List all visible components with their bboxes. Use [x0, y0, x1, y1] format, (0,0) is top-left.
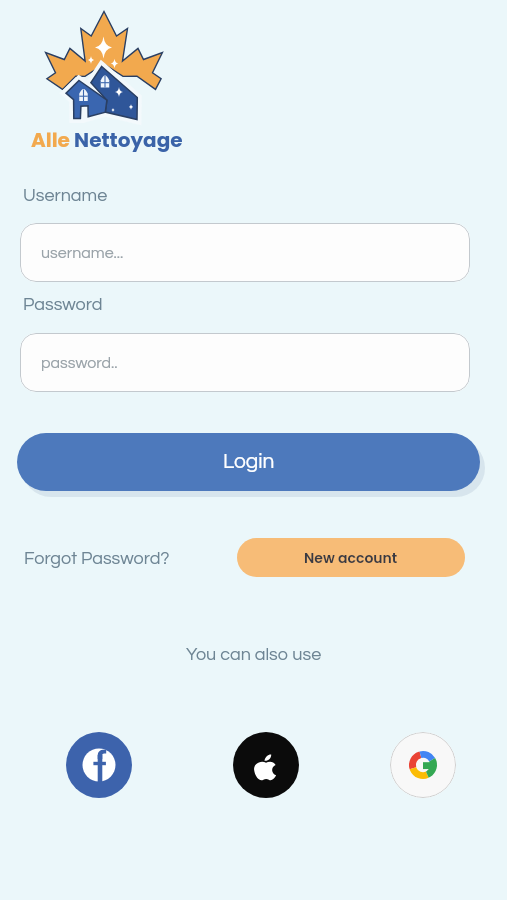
button[interactable]: Sign in with Google — [390, 732, 456, 798]
button[interactable]: username... — [20, 223, 470, 282]
button[interactable]: Sign in with Apple — [233, 732, 299, 798]
button[interactable]: Login — [17, 433, 480, 491]
button[interactable]: Forgot Password? — [24, 549, 170, 568]
button[interactable]: password.. — [20, 333, 470, 392]
staticText: New account — [304, 548, 398, 568]
button[interactable]: New account — [237, 538, 465, 577]
staticText: Password — [23, 295, 103, 314]
staticText: password.. — [41, 355, 118, 371]
staticText: Login — [223, 451, 275, 473]
staticText: Username — [23, 186, 108, 205]
button[interactable]: Sign in with Facebook — [66, 732, 132, 798]
staticText: username... — [41, 245, 124, 261]
staticText: Alle Nettoyage — [31, 126, 183, 154]
staticText: You can also use — [186, 645, 322, 664]
